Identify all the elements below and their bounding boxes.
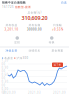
staticText: 招商中证白酒指数	[2, 1, 26, 4]
staticText: +0.55%	[52, 28, 63, 31]
button[interactable]: 定投	[0, 36, 34, 44]
staticText: 0.3000	[1, 80, 8, 87]
staticText: 0.6000	[1, 73, 8, 80]
staticText: 总金额(元)	[27, 11, 41, 14]
staticText: 近1年	[53, 63, 61, 66]
staticText: 转换	[49, 41, 55, 44]
staticText: 基金档案	[51, 49, 63, 52]
staticText: 2020-09	[3, 91, 16, 94]
staticText: 0.9000	[1, 66, 8, 73]
staticText: 1.2000	[1, 59, 8, 66]
staticText: 2021-09	[53, 91, 66, 94]
staticText: 本基金	[4, 56, 13, 60]
staticText: 业绩排名	[28, 49, 40, 52]
staticText: 2021-03	[28, 91, 41, 94]
staticText: 定投	[14, 41, 20, 44]
staticText: 30000.00	[27, 28, 42, 31]
button[interactable]: 近1年	[52, 62, 63, 67]
staticText: 净值走势	[5, 49, 17, 52]
button[interactable]: 转换	[34, 36, 69, 44]
staticText: 持有收益	[5, 23, 17, 27]
staticText: 日涨幅	[53, 23, 62, 27]
staticText: 161725	[2, 5, 14, 9]
staticText: 指数型-股票	[15, 5, 31, 9]
button[interactable]: 自选	[61, 1, 67, 4]
staticText: 自选	[61, 1, 67, 4]
button[interactable]: 净值走势	[0, 49, 23, 52]
staticText: 3,201.10	[4, 28, 18, 31]
button[interactable]: 基金档案	[46, 49, 69, 52]
button[interactable]: 业绩排名	[23, 49, 46, 52]
staticText: 0.0000	[1, 87, 8, 94]
staticText: 沪深300	[16, 56, 28, 60]
staticText: 310,609.20	[21, 14, 47, 21]
staticText: 持有份额	[28, 23, 40, 27]
